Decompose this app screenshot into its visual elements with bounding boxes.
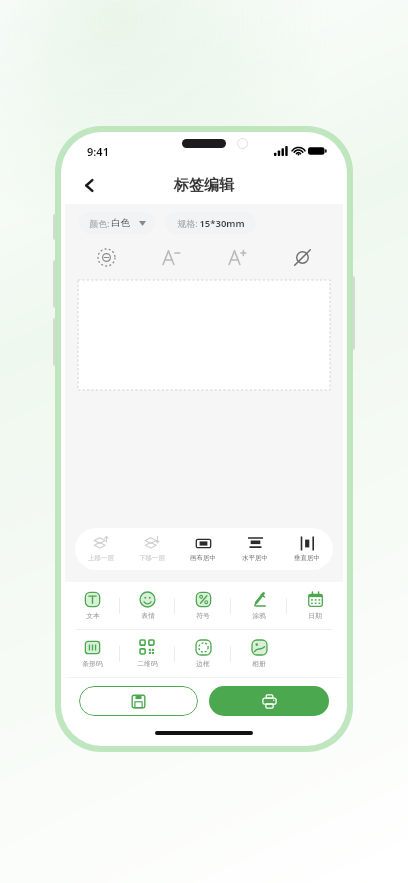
button[interactable]: Back: [73, 169, 105, 201]
button[interactable]: 表情: [120, 582, 175, 629]
button[interactable]: 规格:: [165, 212, 256, 234]
button[interactable]: Save: [79, 686, 198, 716]
button[interactable]: 涂鸦: [231, 582, 287, 629]
button[interactable]: Decrease font size: [156, 242, 186, 272]
button[interactable]: 相册: [231, 630, 287, 677]
button[interactable]: 下移一层: [126, 528, 177, 570]
staticText: 表情: [141, 611, 155, 620]
staticText: 条形码: [82, 659, 103, 668]
button[interactable]: Print: [209, 686, 329, 716]
staticText: 画布居中: [190, 554, 216, 562]
button[interactable]: 日期: [287, 582, 343, 629]
staticText: 文本: [86, 611, 100, 620]
button[interactable]: Increase font size: [222, 242, 252, 272]
staticText: 标签编辑: [174, 176, 234, 195]
staticText: 涂鸦: [252, 611, 266, 620]
button[interactable]: Template: [91, 242, 121, 272]
button[interactable]: 颜色:: [79, 212, 155, 234]
button[interactable]: 文本: [65, 582, 120, 629]
staticText: 相册: [252, 659, 266, 668]
staticText: 符号: [196, 611, 210, 620]
staticText: 边框: [196, 659, 210, 668]
staticText: 上移一层: [88, 554, 114, 562]
button[interactable]: 水平居中: [229, 528, 281, 570]
button[interactable]: 垂直居中: [281, 528, 333, 570]
staticText: 二维码: [137, 659, 158, 668]
button[interactable]: Rotate: [287, 242, 317, 272]
button[interactable]: 画布居中: [177, 528, 229, 570]
staticText: 垂直居中: [294, 554, 320, 562]
staticText: 下移一层: [139, 554, 165, 562]
staticText: 规格:: [176, 217, 199, 229]
staticText: 水平居中: [242, 554, 268, 562]
staticText: 15*30mm: [199, 217, 245, 230]
staticText: 颜色:: [88, 217, 111, 229]
button[interactable]: 条形码: [65, 630, 120, 677]
button[interactable]: 二维码: [120, 630, 175, 677]
button[interactable]: 边框: [175, 630, 231, 677]
button[interactable]: 上移一层: [75, 528, 126, 570]
button[interactable]: 符号: [175, 582, 231, 629]
staticText: 日期: [308, 611, 322, 620]
staticText: 白色: [111, 217, 130, 229]
staticText: 9:41: [87, 144, 109, 159]
